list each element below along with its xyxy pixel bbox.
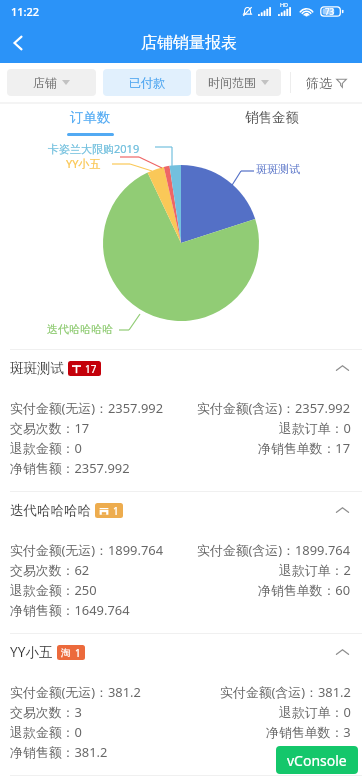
staticText: 净销售额：1649.764 bbox=[10, 601, 130, 619]
staticText: 净销售单数：17 bbox=[258, 439, 351, 457]
button[interactable]: Collapse bbox=[331, 499, 353, 521]
staticText: YY小五 bbox=[10, 643, 53, 661]
button[interactable]: 斑斑测试 bbox=[0, 355, 362, 381]
staticText: 11:22 bbox=[11, 4, 40, 19]
button[interactable]: 迭代哈哈哈哈 bbox=[0, 497, 362, 523]
staticText: 实付金额(无运)：2357.992 bbox=[10, 399, 164, 417]
staticText: 退款订单：0 bbox=[279, 419, 351, 437]
staticText: 实付金额(无运)：381.2 bbox=[10, 683, 141, 701]
staticText: 卡姿兰大限购2019 bbox=[48, 141, 140, 156]
staticText: 淘 bbox=[61, 647, 71, 659]
staticText: 交易次数：62 bbox=[10, 561, 90, 579]
button[interactable]: Collapse bbox=[331, 641, 353, 663]
staticText: 净销售额：381.2 bbox=[10, 743, 108, 761]
button[interactable]: 销售金额 bbox=[181, 104, 362, 136]
staticText: 净销售单数：60 bbox=[258, 581, 351, 599]
button[interactable]: 店铺 bbox=[7, 69, 96, 96]
staticText: vConsole bbox=[287, 751, 347, 770]
staticText: 退款订单：2 bbox=[279, 561, 351, 579]
staticText: 1 bbox=[113, 504, 119, 518]
staticText: 实付金额(无运)：1899.764 bbox=[10, 541, 164, 559]
staticText: 实付金额(含运)：2357.992 bbox=[197, 399, 351, 417]
button[interactable]: vConsole bbox=[276, 746, 358, 774]
staticText: 净销售单数：3 bbox=[266, 723, 351, 741]
staticText: YY小五 bbox=[66, 156, 101, 171]
staticText: 净销售额：2357.992 bbox=[10, 459, 130, 477]
staticText: 17 bbox=[85, 362, 97, 376]
staticText: 迭代哈哈哈哈 bbox=[47, 322, 113, 336]
button[interactable]: 已付款 bbox=[103, 69, 191, 96]
button[interactable]: Collapse bbox=[331, 357, 353, 379]
staticText: 时间范围 bbox=[208, 75, 256, 90]
staticText: 1 bbox=[75, 646, 81, 660]
button[interactable]: 订单数 bbox=[0, 104, 181, 136]
staticText: 迭代哈哈哈哈 bbox=[10, 502, 91, 519]
staticText: 退款金额：250 bbox=[10, 581, 97, 599]
staticText: 退款订单：0 bbox=[279, 703, 351, 721]
staticText: 斑斑测试 bbox=[256, 162, 300, 176]
staticText: 实付金额(含运)：1899.764 bbox=[197, 541, 351, 559]
staticText: 已付款 bbox=[129, 75, 165, 90]
button[interactable]: Back bbox=[0, 22, 36, 63]
button[interactable]: 时间范围 bbox=[196, 69, 281, 96]
button[interactable]: YY小五 bbox=[0, 639, 362, 665]
staticText: 退款金额：0 bbox=[10, 439, 82, 457]
staticText: 斑斑测试 bbox=[10, 360, 64, 377]
staticText: 销售金额 bbox=[245, 109, 299, 126]
staticText: 订单数 bbox=[70, 109, 111, 126]
staticText: 73 bbox=[325, 6, 335, 17]
staticText: 交易次数：17 bbox=[10, 419, 90, 437]
button[interactable]: 筛选 bbox=[291, 63, 362, 102]
staticText: 筛选 bbox=[306, 75, 332, 91]
staticText: 店铺销量报表 bbox=[141, 33, 237, 53]
staticText: 店铺 bbox=[33, 75, 57, 90]
staticText: HD bbox=[280, 1, 289, 8]
staticText: 退款金额：0 bbox=[10, 723, 82, 741]
staticText: 交易次数：3 bbox=[10, 703, 82, 721]
staticText: 实付金额(含运)：381.2 bbox=[220, 683, 351, 701]
